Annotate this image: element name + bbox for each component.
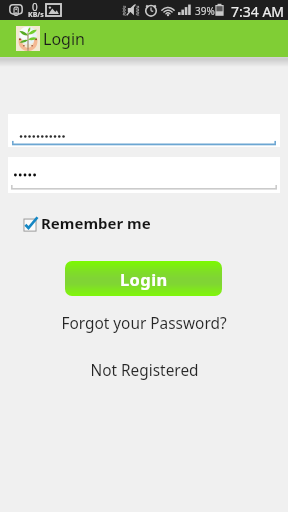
staticText: Forgot your Password? (61, 313, 227, 334)
staticText: 7:34 AM (231, 2, 285, 21)
staticText: Login (120, 268, 168, 290)
button[interactable] (8, 114, 280, 147)
staticText: Not Registered (90, 360, 199, 381)
staticText: Remember me (41, 213, 151, 233)
staticText: 39% (195, 4, 215, 18)
button[interactable] (8, 157, 280, 193)
staticText: 0 (32, 0, 38, 14)
staticText: KB/s (28, 10, 44, 20)
button[interactable]: Remember me (20, 212, 151, 234)
button[interactable]: Forgot your Password? (0, 312, 288, 334)
button[interactable]: Not Registered (0, 359, 288, 381)
button[interactable]: Login (65, 261, 222, 296)
staticText: Login (43, 28, 85, 50)
